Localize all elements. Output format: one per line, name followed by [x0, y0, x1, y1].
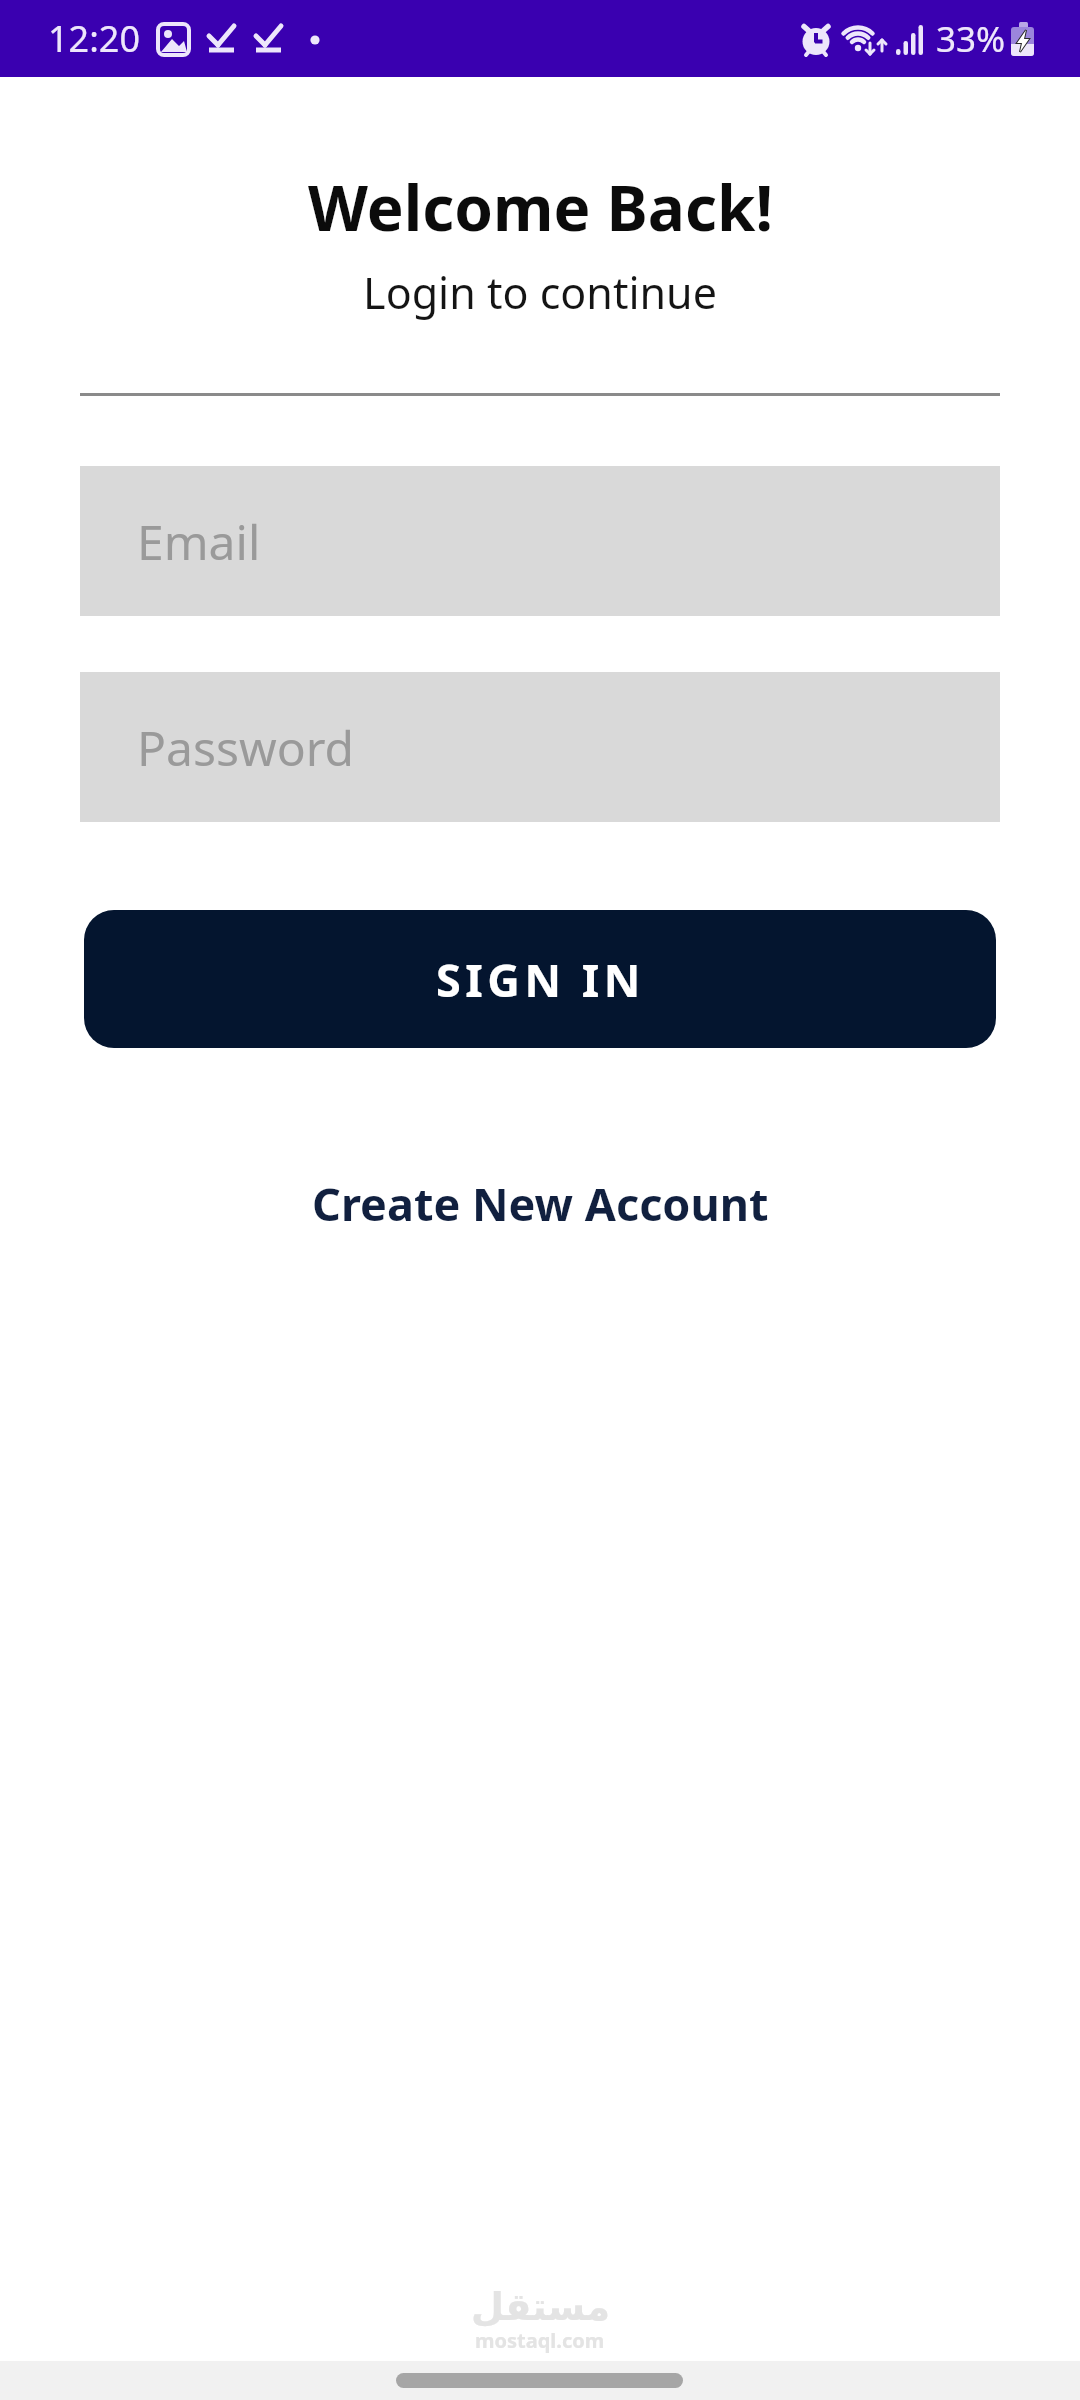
staticText: Welcome Back!	[308, 165, 773, 249]
staticText: Create New Account	[312, 1173, 769, 1234]
staticText: Email	[137, 509, 261, 574]
staticText: 12:20	[48, 14, 141, 63]
staticText: Login to continue	[363, 263, 717, 322]
button[interactable]: SIGN IN	[84, 910, 996, 1048]
staticText: SIGN IN	[436, 949, 645, 1010]
staticText: mostaql.com	[475, 2327, 605, 2354]
button[interactable]: Password	[80, 672, 1000, 822]
button[interactable]: Create New Account	[312, 1173, 769, 1234]
staticText: Password	[137, 715, 355, 780]
button[interactable]: Email	[80, 466, 1000, 616]
staticText: مستقل	[471, 2285, 610, 2329]
staticText: 33%	[936, 15, 1006, 63]
